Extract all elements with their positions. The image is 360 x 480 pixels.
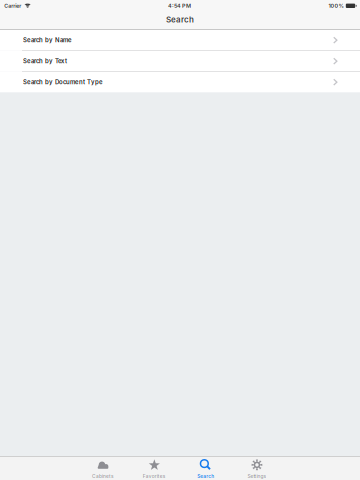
staticText: 4:54 PM [168, 2, 191, 9]
staticText: Search [197, 473, 214, 479]
staticText: Favorites [143, 473, 166, 479]
staticText: Search [166, 15, 194, 25]
staticText: 100% [328, 2, 343, 9]
button[interactable]: Search by Name [0, 30, 360, 50]
staticText: Settings [247, 473, 266, 479]
button[interactable]: Favorites [129, 456, 180, 480]
button[interactable]: Search by Text [0, 51, 360, 71]
staticText: Cabinets [92, 473, 114, 479]
staticText: Carrier [4, 3, 21, 9]
button[interactable]: Search by Document Type [0, 72, 360, 92]
staticText: Search by Document Type [23, 78, 103, 86]
button[interactable]: Cabinets [77, 456, 129, 480]
button[interactable]: Search [180, 456, 231, 480]
staticText: Search by Name [23, 36, 72, 44]
staticText: Search by Text [23, 57, 67, 65]
button[interactable]: Settings [231, 456, 283, 480]
